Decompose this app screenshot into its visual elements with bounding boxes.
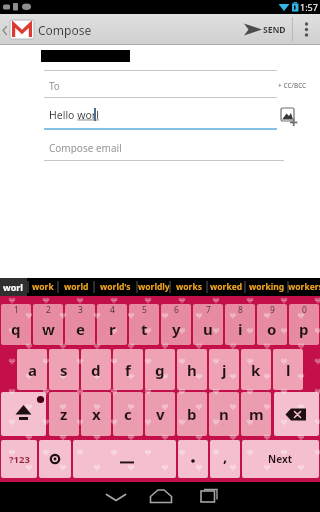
button[interactable]: [178, 440, 208, 478]
button[interactable]: [177, 349, 207, 390]
staticText: h: [187, 360, 197, 380]
button[interactable]: [143, 484, 179, 510]
staticText: 4: [110, 304, 115, 316]
staticText: e: [76, 319, 85, 339]
staticText: y: [172, 319, 181, 339]
staticText: world's: [100, 281, 131, 293]
staticText: To: [49, 79, 60, 91]
button[interactable]: [190, 484, 226, 510]
button[interactable]: [98, 484, 134, 510]
button[interactable]: work: [28, 279, 58, 295]
button[interactable]: [129, 304, 159, 345]
staticText: 7: [206, 304, 211, 316]
staticText: m: [249, 404, 264, 424]
button[interactable]: [209, 392, 239, 436]
staticText: ,: [223, 446, 228, 466]
staticText: Hello worl: [49, 108, 99, 122]
staticText: v: [156, 404, 165, 424]
staticText: world: [64, 281, 89, 293]
button[interactable]: [289, 304, 319, 345]
staticText: t: [141, 319, 148, 339]
staticText: Compose email: [49, 141, 122, 154]
button[interactable]: [257, 304, 287, 345]
staticText: 5: [142, 304, 147, 316]
button[interactable]: [38, 134, 284, 160]
button[interactable]: [238, 14, 290, 44]
button[interactable]: [17, 349, 47, 390]
button[interactable]: Hello worl: [49, 107, 249, 122]
button[interactable]: [1, 304, 31, 345]
staticText: j: [222, 360, 227, 380]
staticText: 3: [78, 304, 83, 316]
button[interactable]: + CC/BCC: [278, 80, 314, 90]
button[interactable]: [97, 304, 127, 345]
button[interactable]: [241, 349, 271, 390]
button[interactable]: [49, 349, 79, 390]
button[interactable]: world: [59, 279, 93, 295]
staticText: i: [238, 319, 243, 339]
button[interactable]: [274, 392, 319, 436]
staticText: + CC/BCC: [278, 81, 307, 90]
button[interactable]: worked: [207, 279, 245, 295]
staticText: 0: [302, 304, 307, 316]
button[interactable]: [145, 392, 175, 436]
staticText: SEND: [263, 24, 286, 36]
button[interactable]: [1, 392, 46, 436]
button[interactable]: worl: [0, 279, 27, 295]
button[interactable]: [1, 440, 37, 478]
button[interactable]: [49, 392, 79, 436]
staticText: p: [299, 319, 309, 339]
staticText: a: [28, 360, 37, 380]
staticText: 8: [238, 304, 243, 316]
button[interactable]: [113, 392, 143, 436]
button[interactable]: [113, 349, 143, 390]
staticText: Next: [268, 452, 293, 466]
button[interactable]: [294, 14, 320, 44]
button[interactable]: [209, 349, 239, 390]
staticText: 6: [174, 304, 179, 316]
button[interactable]: world's: [94, 279, 137, 295]
staticText: ?123: [9, 453, 30, 466]
staticText: w: [42, 319, 55, 339]
button[interactable]: [161, 304, 191, 345]
staticText: z: [60, 404, 68, 424]
button[interactable]: [193, 304, 223, 345]
button[interactable]: [210, 440, 240, 478]
staticText: d: [91, 360, 101, 380]
button[interactable]: worldly: [137, 279, 170, 295]
staticText: g: [155, 360, 165, 380]
button[interactable]: [145, 349, 175, 390]
staticText: worked: [210, 281, 243, 293]
button[interactable]: [277, 104, 301, 128]
staticText: works: [176, 281, 202, 293]
button[interactable]: workers: [288, 279, 320, 295]
staticText: b: [187, 404, 197, 424]
button[interactable]: [81, 392, 111, 436]
staticText: k: [251, 360, 261, 380]
button[interactable]: [177, 392, 207, 436]
button[interactable]: working: [245, 279, 288, 295]
button[interactable]: [81, 349, 111, 390]
staticText: x: [92, 404, 101, 424]
staticText: q: [11, 319, 21, 339]
button[interactable]: works: [170, 279, 207, 295]
staticText: work: [32, 281, 54, 293]
button[interactable]: [65, 304, 95, 345]
staticText: 2: [46, 304, 51, 316]
staticText: worldly: [138, 281, 170, 293]
button[interactable]: [38, 74, 278, 97]
staticText: r: [109, 319, 116, 339]
button[interactable]: [242, 440, 319, 478]
staticText: 1:57: [300, 1, 318, 13]
staticText: worl: [3, 281, 24, 293]
button[interactable]: [39, 440, 71, 478]
staticText: 1: [14, 304, 19, 316]
button[interactable]: [73, 440, 176, 478]
staticText: f: [125, 360, 131, 380]
button[interactable]: [225, 304, 255, 345]
staticText: working: [249, 281, 285, 293]
staticText: Compose: [38, 22, 92, 38]
button[interactable]: [241, 392, 271, 436]
button[interactable]: [273, 349, 303, 390]
button[interactable]: [33, 304, 63, 345]
